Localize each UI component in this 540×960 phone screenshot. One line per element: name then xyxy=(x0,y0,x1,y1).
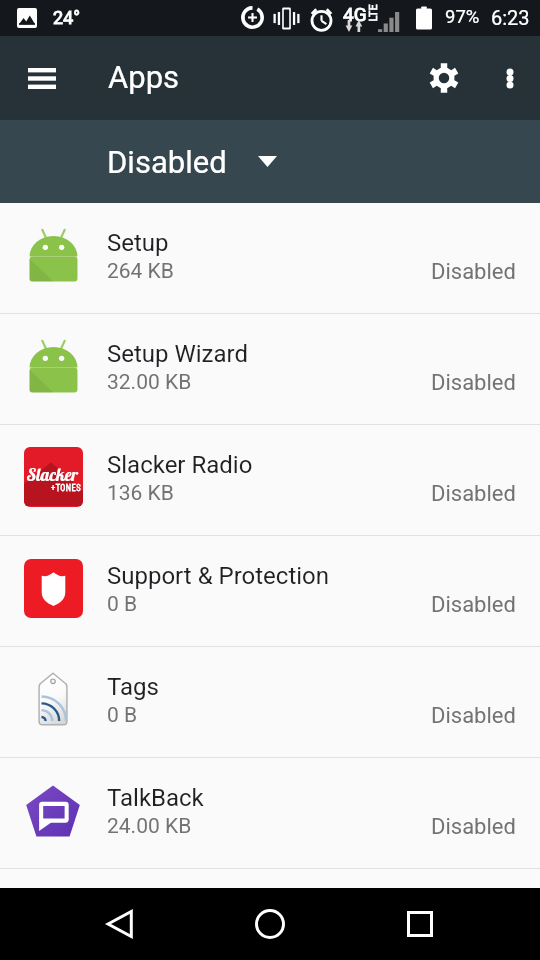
staticText: 4G xyxy=(343,3,367,25)
button[interactable]: Slacker xyxy=(0,425,540,535)
button[interactable]: More options xyxy=(482,50,538,106)
staticText: Disabled xyxy=(107,144,227,180)
staticText: Support & Protection xyxy=(107,562,330,590)
staticText: Disabled xyxy=(431,703,516,729)
staticText: 136 KB xyxy=(107,481,174,506)
staticText: Apps xyxy=(108,59,180,95)
staticText: 97% xyxy=(445,6,480,28)
button[interactable]: Home xyxy=(240,894,300,954)
button[interactable]: Tags xyxy=(0,647,540,757)
staticText: +TONES xyxy=(51,483,81,493)
button[interactable]: Disabled xyxy=(0,120,540,203)
staticText: 0 B xyxy=(107,592,138,617)
button[interactable]: Navigation menu xyxy=(14,50,70,106)
staticText: Disabled xyxy=(431,814,516,840)
staticText: Disabled xyxy=(431,259,516,285)
staticText: Disabled xyxy=(431,481,516,507)
button[interactable]: Setup xyxy=(0,203,540,313)
staticText: LTE xyxy=(366,3,379,21)
staticText: Slacker xyxy=(27,464,78,485)
staticText: Disabled xyxy=(431,370,516,396)
staticText: Setup Wizard xyxy=(107,340,249,368)
staticText: 32.00 KB xyxy=(107,370,192,395)
button[interactable]: Back xyxy=(90,894,150,954)
staticText: Tags xyxy=(107,673,159,701)
staticText: TalkBack xyxy=(107,784,204,812)
staticText: 6:23 xyxy=(491,6,530,29)
staticText: 24.00 KB xyxy=(107,814,192,839)
button[interactable]: Setup Wizard xyxy=(0,314,540,424)
button[interactable]: Recents xyxy=(390,894,450,954)
staticText: Slacker Radio xyxy=(107,451,253,479)
button[interactable]: Settings xyxy=(412,46,476,110)
staticText: 264 KB xyxy=(107,259,174,284)
staticText: 24° xyxy=(53,7,80,28)
staticText: 0 B xyxy=(107,703,138,728)
button[interactable]: TalkBack xyxy=(0,758,540,868)
staticText: Setup xyxy=(107,229,169,257)
staticText: Disabled xyxy=(431,592,516,618)
button[interactable]: Support & Protection xyxy=(0,536,540,646)
